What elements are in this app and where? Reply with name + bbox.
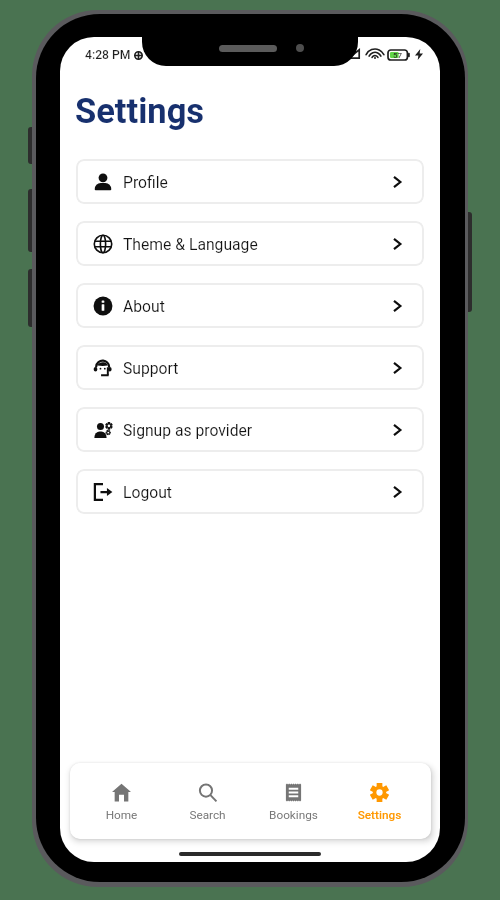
- staticText: Bookings: [264, 808, 323, 822]
- staticText: Support: [123, 359, 179, 377]
- button[interactable]: Profile: [76, 159, 424, 204]
- button[interactable]: Theme & Language: [76, 221, 424, 266]
- button[interactable]: About: [76, 283, 424, 328]
- staticText: Settings: [75, 91, 205, 131]
- staticText: Home: [92, 808, 151, 822]
- button[interactable]: Logout: [76, 469, 424, 514]
- button[interactable]: Home: [92, 763, 151, 839]
- button[interactable]: Support: [76, 345, 424, 390]
- staticText: Profile: [123, 173, 168, 191]
- staticText: Search: [178, 808, 237, 822]
- staticText: Logout: [123, 483, 172, 501]
- staticText: Settings: [350, 808, 409, 822]
- staticText: 57: [393, 51, 403, 60]
- button[interactable]: Bookings: [264, 763, 323, 839]
- staticText: Signup as provider: [123, 421, 253, 439]
- staticText: Theme & Language: [123, 235, 258, 253]
- staticText: 4:28 PM: [85, 48, 131, 62]
- staticText: About: [123, 297, 165, 315]
- button[interactable]: Search: [178, 763, 237, 839]
- button[interactable]: Settings: [350, 763, 409, 839]
- button[interactable]: Signup as provider: [76, 407, 424, 452]
